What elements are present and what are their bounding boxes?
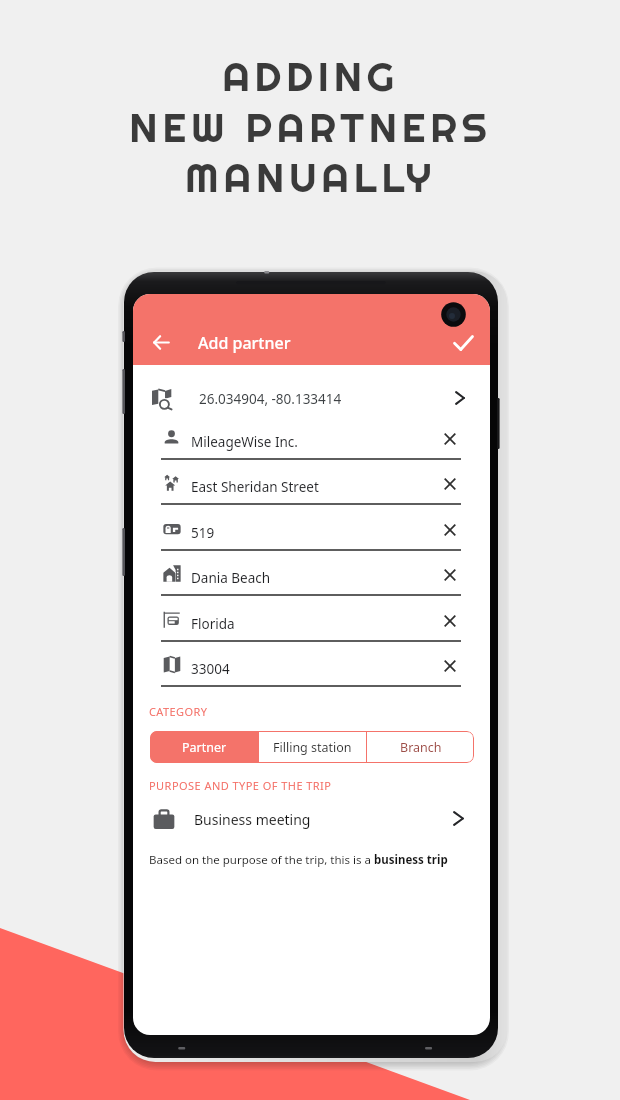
staticText: East Sheridan Street xyxy=(191,478,319,496)
staticText: 33004 xyxy=(191,660,230,678)
button[interactable]: Partner xyxy=(150,731,258,763)
button[interactable]: Clear 33004 xyxy=(439,655,461,677)
staticText: Add partner xyxy=(198,332,291,354)
staticText: MileageWise Inc. xyxy=(191,433,298,451)
staticText: ADDING NEW PARTNERS MANUALLY xyxy=(129,51,492,202)
button[interactable]: Branch xyxy=(367,731,474,763)
staticText: Dania Beach xyxy=(191,569,271,587)
button[interactable]: Clear Dania Beach xyxy=(439,564,461,586)
button[interactable]: Clear 519 xyxy=(439,519,461,541)
staticText: Branch xyxy=(400,739,442,756)
staticText: business trip xyxy=(374,852,448,868)
button[interactable] xyxy=(133,597,490,638)
staticText: 519 xyxy=(191,524,215,542)
button[interactable]: Clear Florida xyxy=(439,610,461,632)
staticText: Partner xyxy=(182,739,227,756)
button[interactable] xyxy=(133,551,490,592)
button[interactable] xyxy=(133,642,490,683)
button[interactable] xyxy=(133,415,490,456)
button[interactable]: Clear East Sheridan Street xyxy=(439,473,461,495)
button[interactable]: Back xyxy=(142,324,180,360)
button[interactable]: Business meeting xyxy=(133,800,490,838)
button[interactable]: 26.034904, -80.133414 xyxy=(133,378,490,420)
staticText: Florida xyxy=(191,615,235,633)
staticText: Filling station xyxy=(273,739,352,756)
button[interactable]: Save xyxy=(443,326,483,360)
button[interactable]: Filling station xyxy=(259,731,366,763)
button[interactable]: Clear MileageWise Inc. xyxy=(439,428,461,450)
staticText: Business meeting xyxy=(194,810,311,829)
button[interactable] xyxy=(133,506,490,547)
staticText: CATEGORY xyxy=(149,704,208,719)
staticText: 26.034904, -80.133414 xyxy=(199,390,342,408)
staticText: PURPOSE AND TYPE OF THE TRIP xyxy=(149,778,332,793)
button[interactable] xyxy=(133,460,490,501)
staticText: Based on the purpose of the trip, this i… xyxy=(149,852,374,868)
